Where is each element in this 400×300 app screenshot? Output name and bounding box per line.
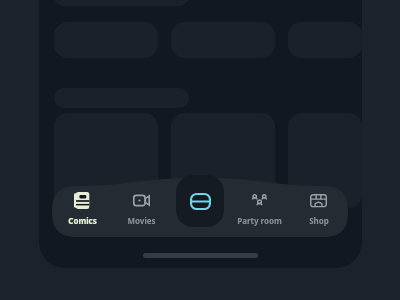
staticText: Comics [68, 215, 97, 226]
button[interactable]: Comics [52, 178, 112, 237]
staticText: Shop [309, 215, 329, 226]
button[interactable]: Party room [230, 178, 289, 237]
button[interactable]: Reader [176, 175, 224, 227]
staticText: Movies [127, 215, 156, 226]
button[interactable]: Movies [112, 178, 171, 237]
button[interactable]: Shop [289, 178, 348, 237]
staticText: Party room [237, 215, 282, 226]
